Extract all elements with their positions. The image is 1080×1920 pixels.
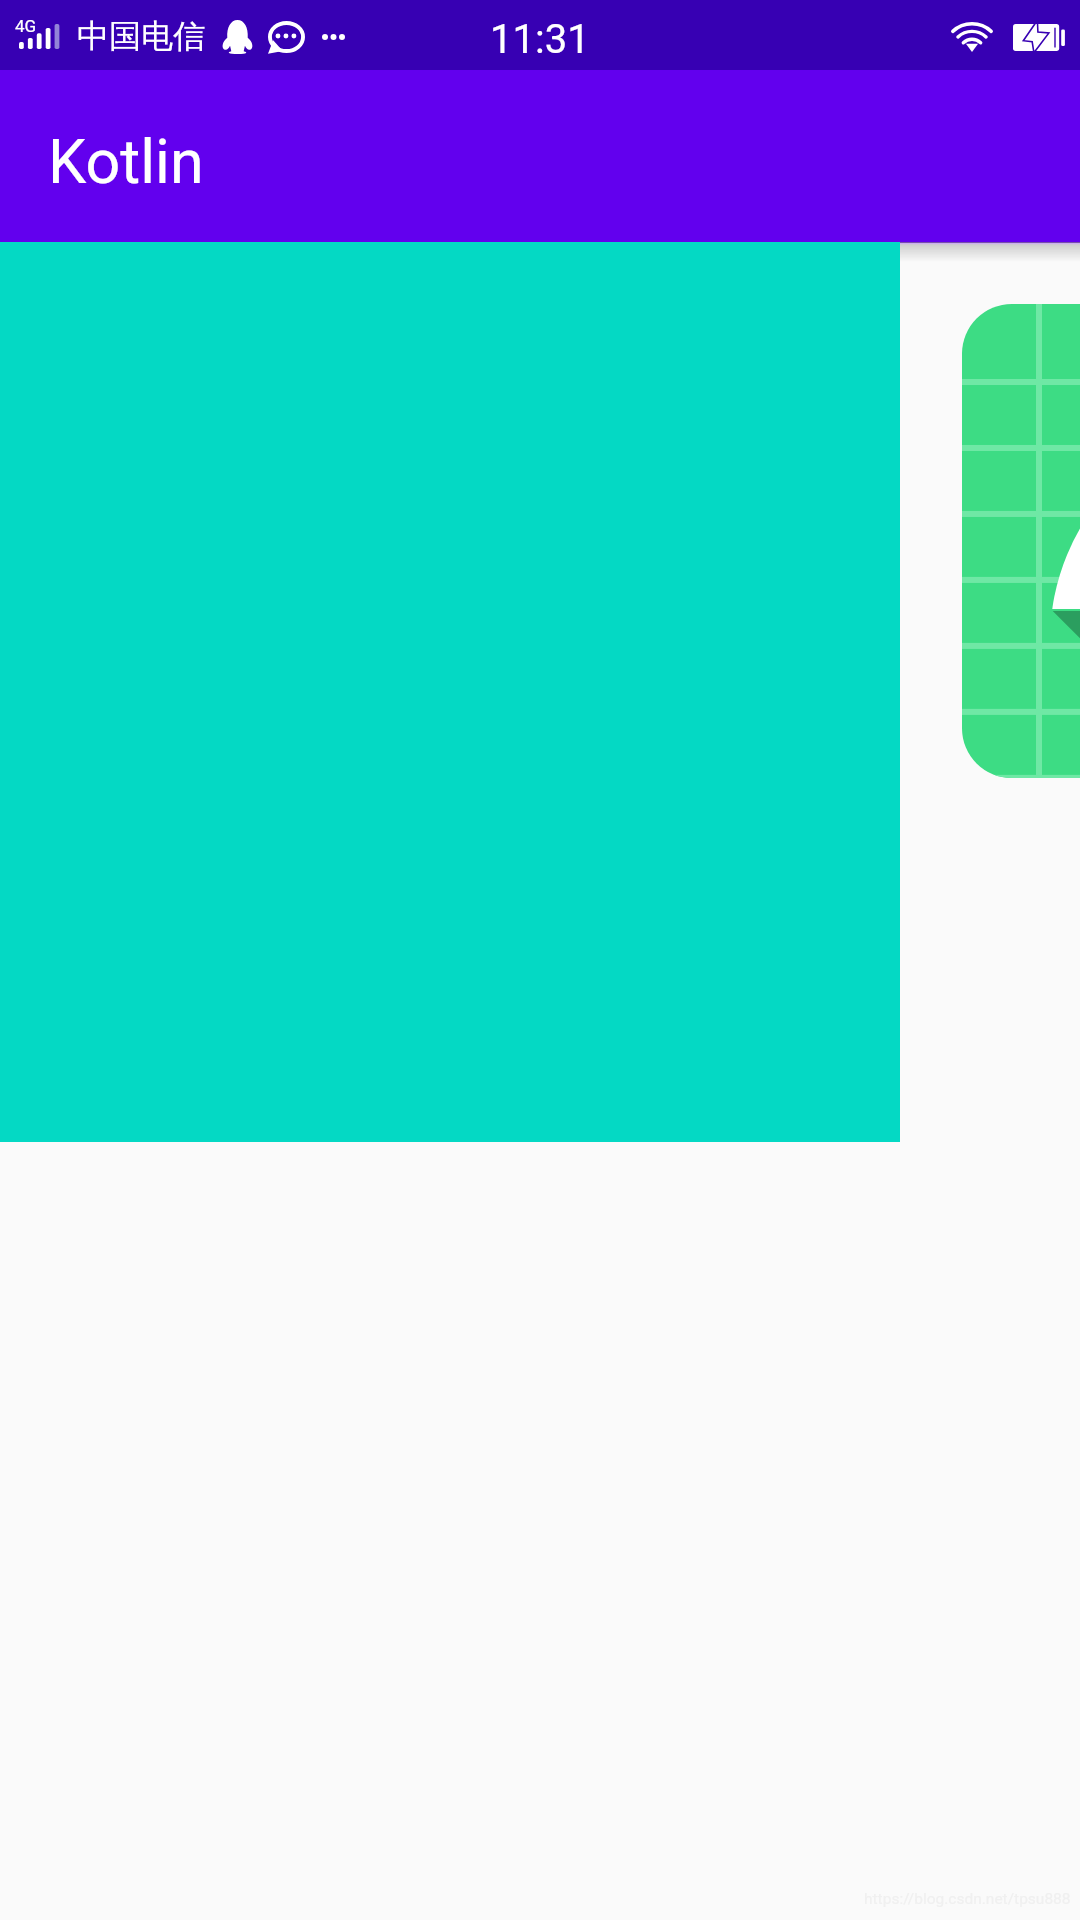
staticText: 4G	[15, 16, 37, 36]
staticText: 中国电信	[77, 16, 205, 56]
staticText: https://blog.csdn.net/tpsu888	[864, 1890, 1071, 1908]
staticText: Kotlin	[48, 126, 204, 197]
button[interactable]: Kotlin	[0, 70, 1080, 242]
other: Battery charging	[1013, 24, 1065, 51]
other: Wi-Fi connected	[950, 20, 994, 52]
other: Mobile signal strength	[19, 24, 60, 49]
other: Message notification	[268, 21, 305, 53]
other: More notifications	[322, 34, 345, 40]
staticText: 11:31	[490, 16, 590, 63]
button[interactable]: App launcher icon	[962, 304, 1080, 778]
other: QQ notification	[222, 20, 253, 54]
